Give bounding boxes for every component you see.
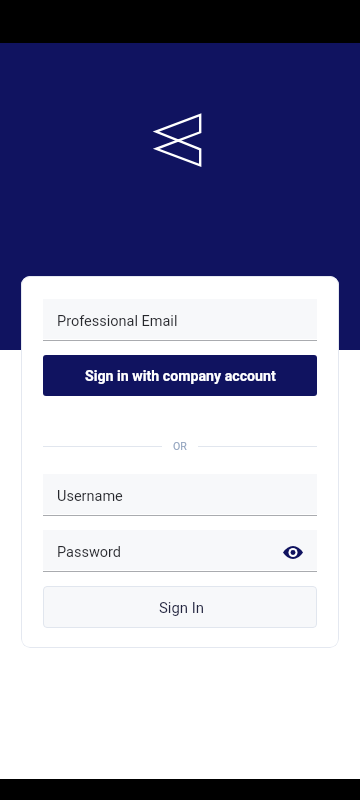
button[interactable]: Sign In: [43, 586, 317, 628]
staticText: Sign In: [159, 599, 205, 616]
button[interactable]: Professional Email: [43, 299, 317, 339]
staticText: Sign in with company account: [85, 368, 276, 385]
staticText: OR: [173, 440, 187, 452]
button[interactable]: Show password: [281, 540, 305, 564]
staticText: Password: [57, 544, 122, 561]
button[interactable]: Sign in with company account: [43, 355, 317, 396]
button[interactable]: Password: [43, 530, 317, 570]
staticText: Professional Email: [57, 313, 178, 330]
button[interactable]: Username: [43, 474, 317, 514]
staticText: Username: [57, 488, 123, 505]
